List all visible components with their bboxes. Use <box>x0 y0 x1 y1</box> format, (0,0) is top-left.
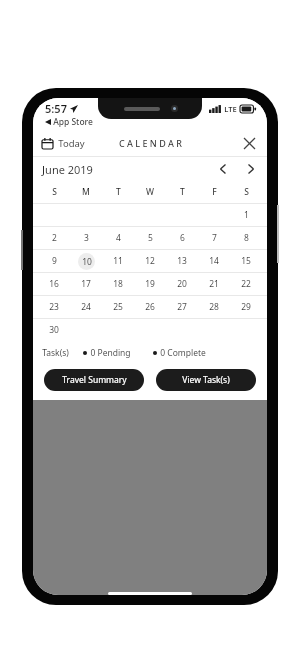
button[interactable]: View Task(s) <box>156 369 256 391</box>
staticText: M <box>82 186 90 198</box>
staticText: T <box>180 186 185 198</box>
staticText: 10 <box>82 256 92 268</box>
staticText: T <box>116 186 121 198</box>
staticText: 8 <box>244 232 249 244</box>
button[interactable]: 23 <box>38 296 70 318</box>
staticText: Today <box>58 137 85 150</box>
staticText: 5 <box>148 232 153 244</box>
staticText: Travel Summary <box>62 374 127 386</box>
staticText: 20 <box>177 278 187 290</box>
staticText: W <box>146 186 154 198</box>
button[interactable]: 21 <box>198 273 230 295</box>
button[interactable]: 24 <box>70 296 102 318</box>
staticText: S <box>52 186 57 198</box>
staticText: 21 <box>209 278 219 290</box>
button[interactable]: 14 <box>198 250 230 272</box>
button[interactable]: 2 <box>38 227 70 249</box>
staticText: 14 <box>209 255 219 267</box>
staticText: 27 <box>177 301 187 313</box>
staticText: F <box>212 186 217 198</box>
button[interactable]: 6 <box>166 227 198 249</box>
button[interactable]: 17 <box>70 273 102 295</box>
button[interactable]: 29 <box>230 296 262 318</box>
staticText: LTE <box>224 104 237 114</box>
staticText: App Store <box>53 116 93 128</box>
staticText: June 2019 <box>42 162 93 177</box>
staticText: 18 <box>113 278 123 290</box>
staticText: 30 <box>49 324 59 336</box>
staticText: 3 <box>84 232 89 244</box>
button[interactable]: 19 <box>134 273 166 295</box>
button[interactable]: 3 <box>70 227 102 249</box>
button[interactable]: 15 <box>230 250 262 272</box>
button[interactable]: 25 <box>102 296 134 318</box>
staticText: 6 <box>180 232 185 244</box>
button[interactable]: Today <box>42 137 85 150</box>
button[interactable]: 4 <box>102 227 134 249</box>
button[interactable]: 16 <box>38 273 70 295</box>
staticText: 13 <box>177 255 187 267</box>
staticText: 0 Pending <box>90 347 131 359</box>
staticText: 9 <box>52 255 57 267</box>
button[interactable]: 10 <box>70 250 102 272</box>
staticText: 5:57 <box>45 101 67 116</box>
staticText: S <box>244 186 249 198</box>
button[interactable]: 8 <box>230 227 262 249</box>
staticText: 4 <box>116 232 121 244</box>
staticText: 7 <box>212 232 217 244</box>
staticText: 12 <box>145 255 155 267</box>
staticText: 25 <box>113 301 123 313</box>
staticText: 24 <box>81 301 91 313</box>
button[interactable]: 18 <box>102 273 134 295</box>
staticText: 19 <box>145 278 155 290</box>
button[interactable]: 9 <box>38 250 70 272</box>
staticText: C A L E N D A R <box>119 137 182 149</box>
staticText: View Task(s) <box>182 374 230 386</box>
staticText: 23 <box>49 301 59 313</box>
button[interactable]: 12 <box>134 250 166 272</box>
staticText: 1 <box>244 209 249 221</box>
button[interactable]: 30 <box>38 319 70 341</box>
staticText: Task(s) <box>42 347 69 359</box>
button[interactable]: Travel Summary <box>44 369 144 391</box>
staticText: 0 Complete <box>160 347 206 359</box>
button[interactable]: 1 <box>230 204 262 226</box>
staticText: 2 <box>52 232 57 244</box>
button[interactable]: 20 <box>166 273 198 295</box>
button[interactable]: 26 <box>134 296 166 318</box>
button[interactable]: 27 <box>166 296 198 318</box>
staticText: 15 <box>241 255 251 267</box>
staticText: 22 <box>241 278 251 290</box>
button[interactable]: Next month <box>241 159 261 179</box>
staticText: 16 <box>49 278 59 290</box>
button[interactable]: 11 <box>102 250 134 272</box>
staticText: 29 <box>241 301 251 313</box>
button[interactable]: 28 <box>198 296 230 318</box>
button[interactable]: Close <box>240 134 258 152</box>
button[interactable]: 22 <box>230 273 262 295</box>
button[interactable]: 5 <box>134 227 166 249</box>
staticText: 26 <box>145 301 155 313</box>
button[interactable]: Previous month <box>213 159 233 179</box>
button[interactable]: 13 <box>166 250 198 272</box>
staticText: 28 <box>209 301 219 313</box>
staticText: 17 <box>81 278 91 290</box>
staticText: 11 <box>113 255 123 267</box>
button[interactable]: 7 <box>198 227 230 249</box>
